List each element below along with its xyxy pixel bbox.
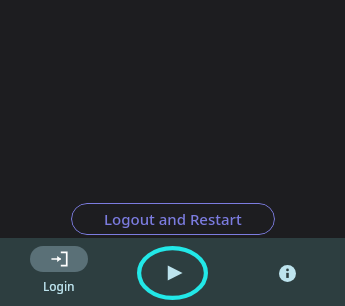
button[interactable]: Play [136,245,209,301]
staticText: Login [43,278,75,294]
button[interactable]: Logout and Restart [71,203,275,235]
staticText: Logout and Restart [104,209,242,229]
button[interactable]: Info [269,255,305,291]
button[interactable]: Login [22,246,96,294]
